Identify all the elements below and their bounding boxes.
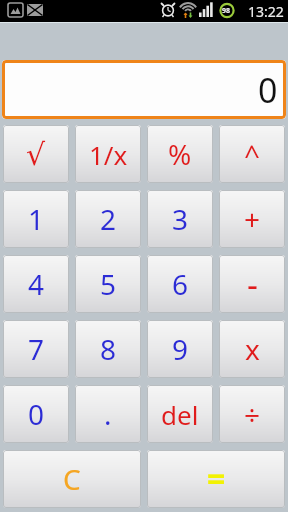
button[interactable]: - — [219, 255, 285, 313]
button[interactable]: 0 — [3, 385, 69, 443]
button[interactable]: ÷ — [219, 385, 285, 443]
staticText: 9 — [172, 330, 189, 368]
button[interactable]: 0 — [2, 60, 286, 119]
button[interactable]: 1/x — [75, 125, 141, 183]
button[interactable]: 8 — [75, 320, 141, 378]
button[interactable]: ^ — [219, 125, 285, 183]
staticText: 1 — [28, 200, 45, 238]
button[interactable]: 3 — [147, 190, 213, 248]
staticText: 1/x — [89, 137, 128, 172]
button[interactable]: 7 — [3, 320, 69, 378]
staticText: 3 — [172, 200, 189, 238]
staticText: ÷ — [244, 395, 261, 433]
button[interactable]: x — [219, 320, 285, 378]
staticText: 8 — [100, 330, 117, 368]
staticText: 0 — [258, 67, 278, 113]
staticText: 5 — [100, 265, 117, 303]
button[interactable]: del — [147, 385, 213, 443]
staticText: 4 — [28, 265, 45, 303]
button[interactable]: 2 — [75, 190, 141, 248]
button[interactable]: 5 — [75, 255, 141, 313]
button[interactable]: 6 — [147, 255, 213, 313]
staticText: 13:22 — [248, 2, 284, 21]
staticText: = — [207, 457, 226, 501]
button[interactable]: + — [219, 190, 285, 248]
button[interactable]: % — [147, 125, 213, 183]
staticText: . — [104, 395, 112, 433]
staticText: 2 — [100, 200, 117, 238]
staticText: + — [244, 200, 261, 238]
button[interactable]: √ — [3, 125, 69, 183]
button[interactable]: 9 — [147, 320, 213, 378]
button[interactable]: 4 — [3, 255, 69, 313]
staticText: % — [168, 135, 192, 173]
staticText: 7 — [28, 330, 45, 368]
staticText: del — [161, 397, 199, 432]
staticText: C — [63, 460, 81, 498]
staticText: - — [247, 261, 258, 307]
staticText: x — [245, 330, 260, 368]
staticText: 98 — [222, 6, 231, 16]
staticText: 6 — [172, 265, 189, 303]
staticText: ^ — [244, 135, 261, 173]
button[interactable]: . — [75, 385, 141, 443]
button[interactable]: 1 — [3, 190, 69, 248]
staticText: 0 — [28, 395, 45, 433]
button[interactable]: = — [147, 450, 285, 508]
button[interactable]: C — [3, 450, 141, 508]
staticText: √ — [26, 137, 46, 172]
